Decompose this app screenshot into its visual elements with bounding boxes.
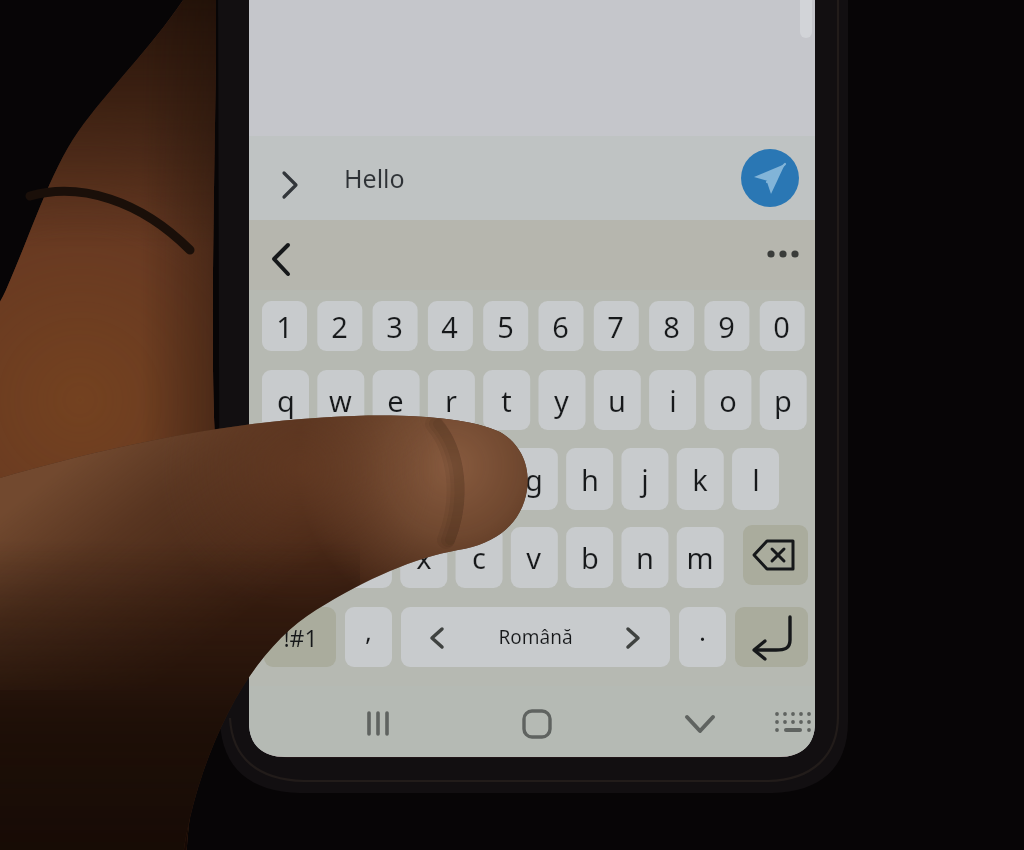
staticText: l (752, 460, 760, 499)
staticText: . (699, 613, 706, 648)
button[interactable]: 5 (483, 301, 528, 351)
staticText: g (525, 460, 543, 499)
staticText: u (608, 381, 626, 420)
staticText: v (526, 538, 541, 577)
staticText: 8 (663, 307, 680, 346)
button[interactable]: w (317, 370, 364, 430)
staticText: h (581, 460, 599, 499)
button[interactable]: i (649, 370, 696, 430)
staticText: x (416, 538, 432, 577)
button[interactable]: 2 (317, 301, 362, 351)
button[interactable]: Hello (344, 136, 724, 220)
button[interactable]: k (676, 448, 723, 510)
button[interactable]: t (483, 370, 530, 430)
button[interactable]: , (345, 600, 392, 660)
staticText: 3 (386, 307, 403, 346)
button[interactable]: f (455, 448, 502, 510)
button[interactable]: Send (741, 149, 799, 207)
staticText: 1 (276, 307, 293, 346)
button[interactable]: 4 (427, 301, 472, 351)
button[interactable]: q (262, 370, 309, 430)
staticText: o (719, 381, 737, 420)
button[interactable]: 7 (593, 301, 638, 351)
button[interactable]: r (427, 370, 474, 430)
button[interactable]: j (621, 448, 668, 510)
button[interactable]: n (621, 527, 668, 588)
staticText: 6 (552, 307, 569, 346)
staticText: Română (498, 624, 573, 650)
button[interactable]: 6 (538, 301, 583, 351)
button[interactable]: !#1 (264, 607, 336, 667)
button[interactable]: 3 (372, 301, 417, 351)
staticText: b (581, 538, 599, 577)
staticText: q (277, 381, 295, 420)
staticText: n (636, 538, 654, 577)
staticText: j (641, 460, 649, 499)
button[interactable]: l (732, 448, 779, 510)
staticText: r (445, 381, 457, 420)
staticText: t (501, 381, 512, 420)
button[interactable]: u (593, 370, 640, 430)
button[interactable]: s (344, 448, 391, 510)
button[interactable]: c (455, 527, 502, 588)
staticText: e (387, 381, 404, 420)
button[interactable]: 9 (704, 301, 749, 351)
button[interactable]: e (372, 370, 419, 430)
button[interactable]: Home (509, 698, 565, 750)
staticText: p (774, 381, 792, 420)
button[interactable]: g (510, 448, 557, 510)
button[interactable]: m (676, 527, 723, 588)
button[interactable]: y (538, 370, 585, 430)
staticText: y (554, 381, 569, 420)
staticText: !#1 (283, 622, 318, 653)
staticText: w (329, 381, 352, 420)
button[interactable]: z (344, 527, 391, 588)
button[interactable]: v (510, 527, 557, 588)
staticText: m (686, 538, 714, 577)
staticText: k (692, 460, 708, 499)
button[interactable]: 8 (649, 301, 694, 351)
button[interactable]: Enter (735, 607, 808, 667)
button[interactable]: Hide keyboard (674, 698, 726, 750)
staticText: c (472, 538, 486, 577)
button[interactable]: p (759, 370, 806, 430)
staticText: Hello (344, 161, 405, 195)
button[interactable]: Backspace (743, 525, 808, 585)
staticText: 5 (497, 307, 514, 346)
staticText: , (365, 613, 372, 648)
button[interactable]: Expand (264, 152, 320, 208)
button[interactable]: Română (401, 607, 670, 667)
button[interactable]: Back (262, 230, 314, 282)
button[interactable]: Recents (350, 698, 406, 750)
button[interactable]: More options (756, 230, 808, 282)
staticText: 4 (441, 307, 458, 346)
staticText: 2 (331, 307, 348, 346)
button[interactable]: o (704, 370, 751, 430)
button[interactable]: x (400, 527, 447, 588)
button[interactable]: . (679, 600, 726, 660)
button[interactable]: 0 (759, 301, 804, 351)
staticText: i (669, 381, 677, 420)
staticText: 0 (773, 307, 790, 346)
staticText: 9 (718, 307, 735, 346)
button[interactable]: b (566, 527, 613, 588)
button[interactable]: Switch keyboard (767, 698, 819, 750)
button[interactable]: h (566, 448, 613, 510)
button[interactable]: 1 (262, 301, 307, 351)
button[interactable]: d (400, 448, 447, 510)
staticText: z (361, 538, 375, 577)
staticText: 7 (607, 307, 624, 346)
